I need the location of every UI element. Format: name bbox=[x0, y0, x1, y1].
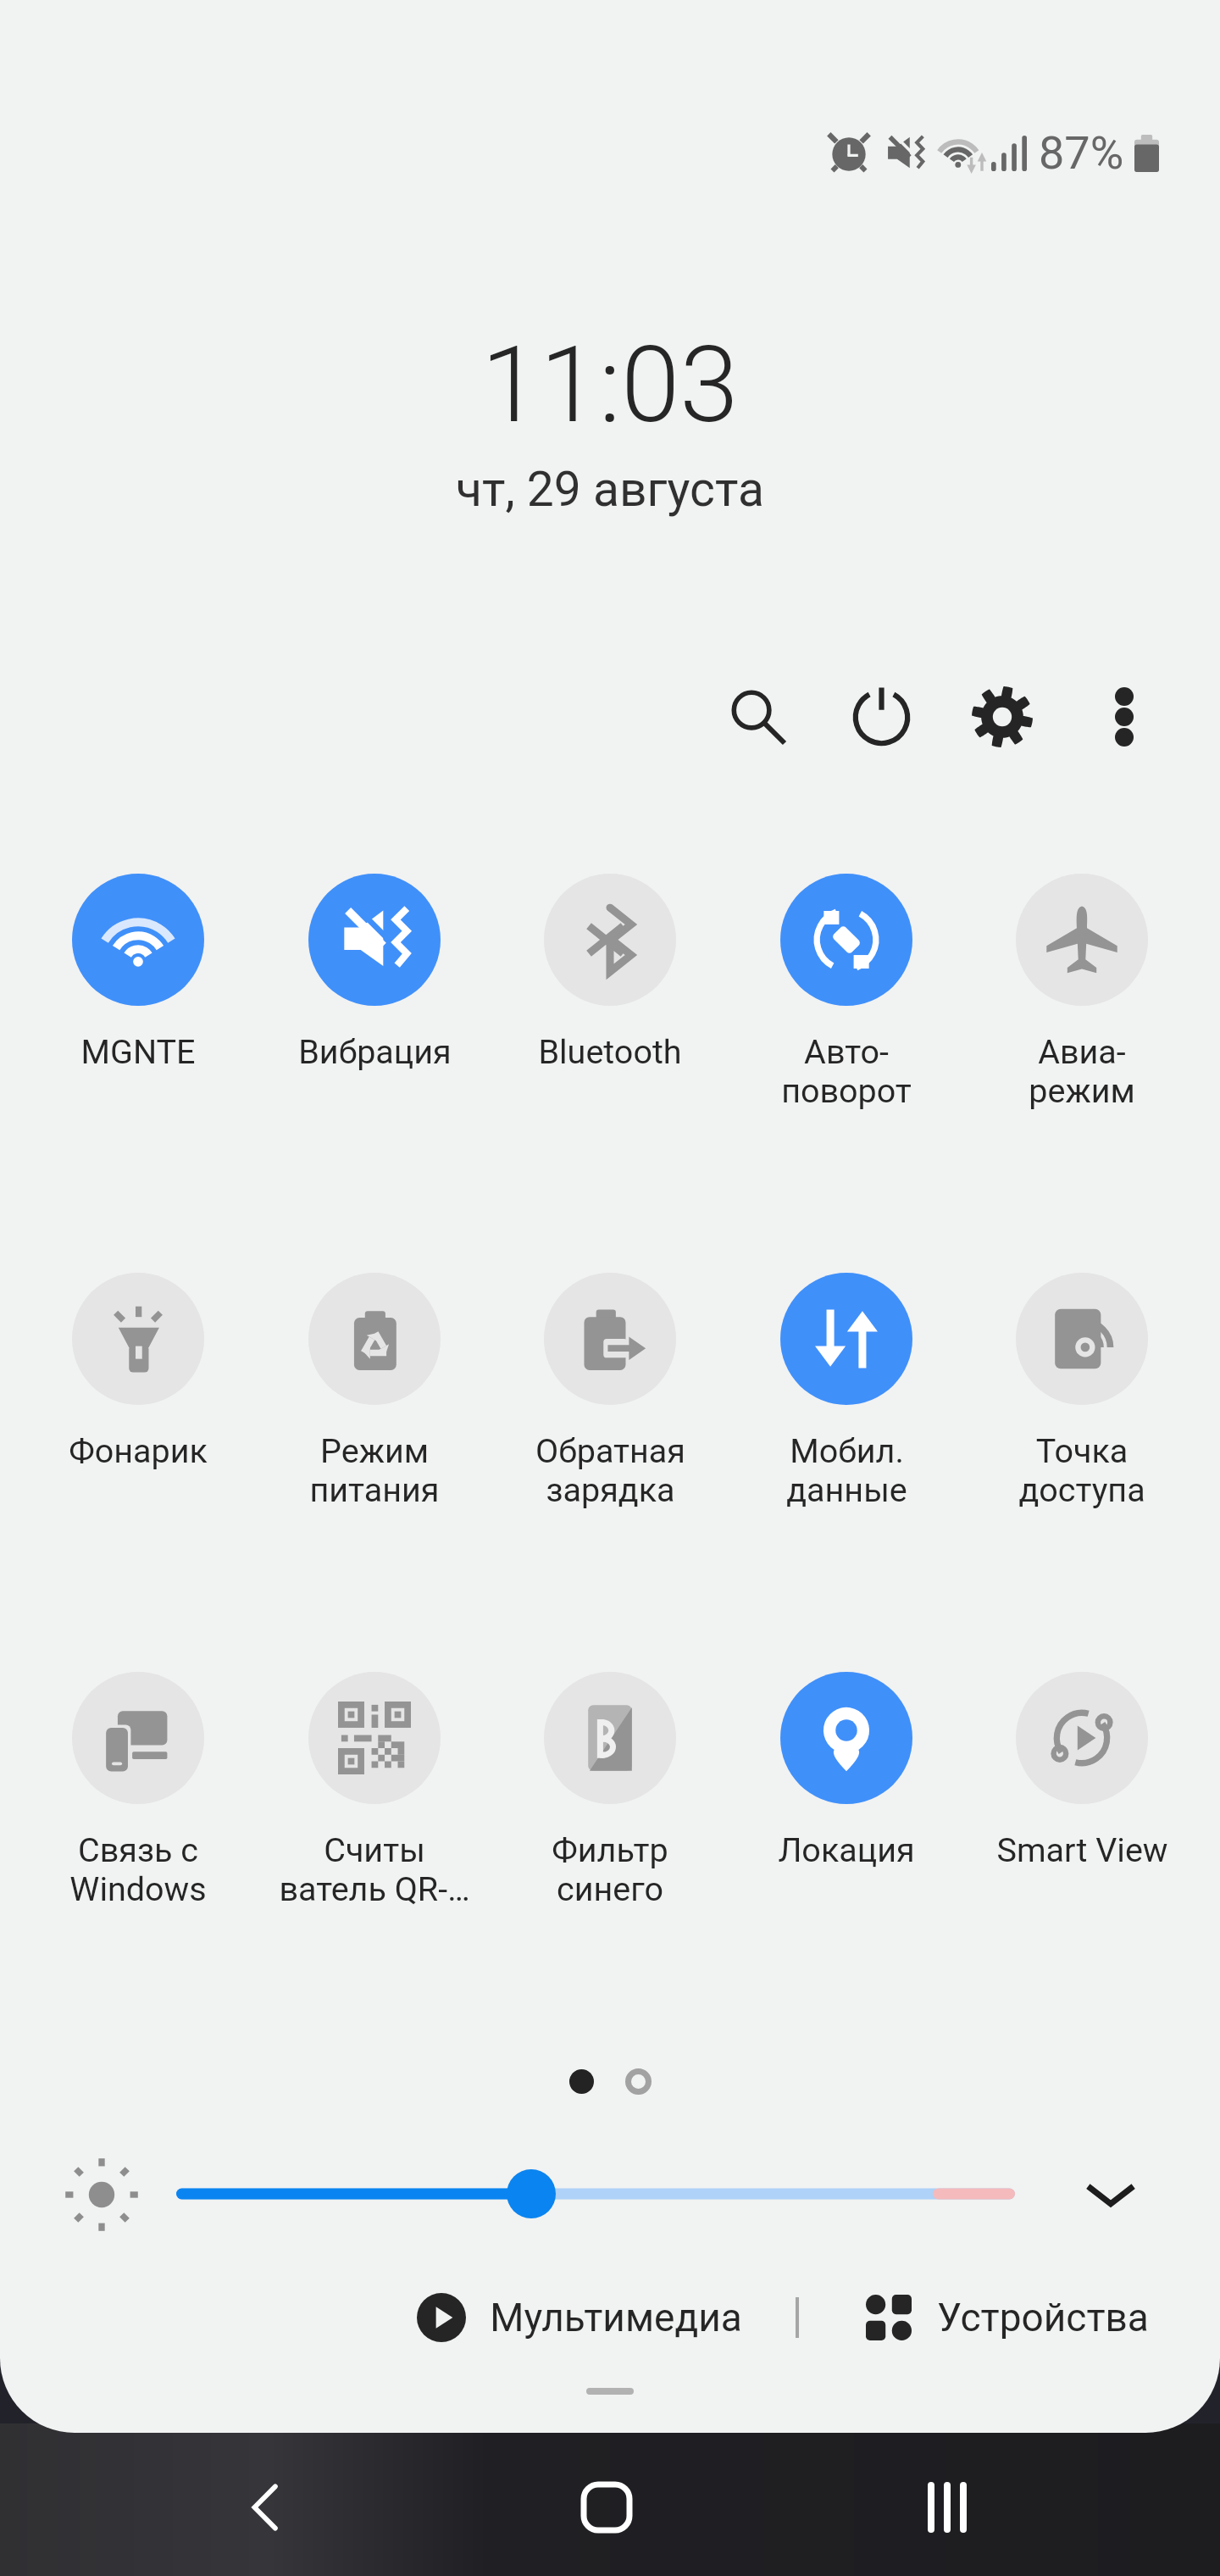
staticText: Точка доступа bbox=[1018, 1431, 1145, 1510]
staticText: Фонарик bbox=[69, 1431, 208, 1470]
button[interactable]: Устройства bbox=[866, 2288, 1149, 2347]
staticText: Фильтр синего bbox=[552, 1830, 668, 1909]
button[interactable]: Авиа- режим bbox=[964, 874, 1200, 1111]
staticText: Устройства bbox=[937, 2295, 1149, 2340]
staticText: Авиа- режим bbox=[1029, 1032, 1135, 1111]
staticText: Bluetooth bbox=[538, 1032, 682, 1071]
button[interactable]: Search bbox=[711, 669, 806, 764]
button[interactable]: Обратная зарядка bbox=[492, 1273, 728, 1510]
button[interactable]: Связь с Windows bbox=[20, 1672, 256, 1909]
staticText: 87% bbox=[1039, 126, 1124, 180]
staticText: Мобил. данные bbox=[786, 1431, 907, 1510]
staticText: 11:03 bbox=[481, 323, 739, 447]
staticText: Обратная зарядка bbox=[535, 1431, 685, 1510]
staticText: Считы ватель QR-… bbox=[279, 1830, 470, 1909]
staticText: Вибрация bbox=[298, 1032, 452, 1071]
staticText: Режим питания bbox=[309, 1431, 440, 1510]
staticText: Локация bbox=[778, 1830, 915, 1869]
staticText: Авто- поворот bbox=[781, 1032, 912, 1111]
button[interactable]: Режим питания bbox=[257, 1273, 492, 1510]
button[interactable]: Home bbox=[552, 2453, 661, 2562]
button[interactable]: Вибрация bbox=[257, 874, 492, 1071]
button[interactable]: Точка доступа bbox=[964, 1273, 1200, 1510]
button[interactable]: Power off bbox=[834, 669, 929, 764]
staticText: Smart View bbox=[996, 1830, 1168, 1869]
button[interactable]: Локация bbox=[729, 1672, 964, 1869]
button[interactable]: Мобил. данные bbox=[729, 1273, 964, 1510]
staticText: Связь с Windows bbox=[69, 1830, 207, 1909]
button[interactable]: More options bbox=[1077, 669, 1172, 764]
button[interactable]: Считы ватель QR-… bbox=[257, 1672, 492, 1909]
staticText: чт, 29 августа bbox=[456, 461, 764, 518]
button[interactable]: Фонарик bbox=[20, 1273, 256, 1470]
button[interactable]: Фильтр синего bbox=[492, 1672, 728, 1909]
button[interactable]: Recent apps bbox=[893, 2453, 1001, 2562]
button[interactable]: Back bbox=[210, 2453, 319, 2562]
button[interactable]: MGNTE bbox=[20, 874, 256, 1071]
button[interactable]: Bluetooth bbox=[492, 874, 728, 1071]
button[interactable]: Авто- поворот bbox=[729, 874, 964, 1111]
button[interactable]: Мультимедиа bbox=[417, 2288, 742, 2347]
staticText: MGNTE bbox=[80, 1032, 196, 1071]
button[interactable]: Settings bbox=[955, 669, 1050, 764]
staticText: Мультимедиа bbox=[490, 2295, 742, 2340]
button[interactable]: Smart View bbox=[964, 1672, 1200, 1869]
